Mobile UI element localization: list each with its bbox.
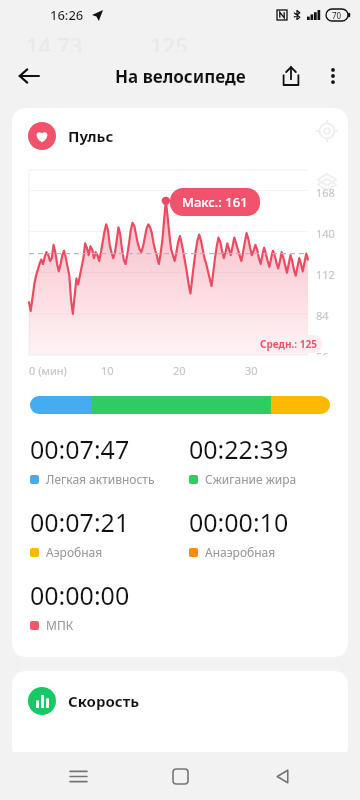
button[interactable]: Share xyxy=(270,55,312,97)
staticText: 0 (мин) xyxy=(29,363,67,378)
staticText: 00:07:47 xyxy=(30,432,130,466)
staticText: 56 xyxy=(316,349,329,355)
staticText: Скорость xyxy=(68,691,140,711)
staticText: 16:26 xyxy=(50,6,84,24)
button[interactable]: Back xyxy=(8,55,50,97)
staticText: Средн.: 125 xyxy=(260,337,317,351)
staticText: 00:00:00 xyxy=(30,578,130,612)
staticText: 168 xyxy=(316,185,335,200)
staticText: МПК xyxy=(46,617,74,633)
staticText: 112 xyxy=(316,267,335,282)
staticText: На велосипеде xyxy=(115,65,246,88)
button[interactable]: Скорость xyxy=(28,687,348,715)
staticText: Легкая активность xyxy=(46,471,155,487)
staticText: Макс.: 161 xyxy=(182,193,248,211)
staticText: 10 xyxy=(101,363,114,378)
staticText: Сжигание жира xyxy=(205,471,297,487)
staticText: 20 xyxy=(173,363,186,378)
staticText: 00:22:39 xyxy=(189,432,289,466)
button[interactable]: Recents xyxy=(54,752,102,800)
staticText: 14,73 xyxy=(26,30,83,52)
button[interactable]: Средн.: 125 xyxy=(255,335,322,353)
staticText: 140 xyxy=(316,226,335,241)
staticText: 00:00:10 xyxy=(189,505,289,539)
button[interactable]: Пульс xyxy=(28,122,348,150)
button[interactable]: More options xyxy=(312,55,354,97)
staticText: 00:07:21 xyxy=(30,505,130,539)
staticText: Аэробная xyxy=(46,544,103,560)
staticText: Пульс xyxy=(68,126,114,146)
button[interactable]: Макс.: 161 xyxy=(170,188,260,216)
staticText: 125 xyxy=(150,30,188,52)
button[interactable]: Home xyxy=(156,752,204,800)
staticText: 84 xyxy=(316,308,329,323)
button[interactable]: Back xyxy=(258,752,306,800)
staticText: 30 xyxy=(245,363,258,378)
staticText: Анаэробная xyxy=(205,544,276,560)
staticText: 70 xyxy=(332,10,342,21)
